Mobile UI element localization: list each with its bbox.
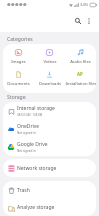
button[interactable]: Search — [72, 15, 83, 26]
staticText: Installation files — [65, 81, 96, 87]
button[interactable]: Images — [3, 46, 34, 68]
staticText: Network storage — [17, 165, 57, 172]
staticText: Internal storage — [17, 105, 55, 112]
staticText: Not signed in — [17, 149, 36, 153]
staticText: Images — [11, 59, 26, 65]
button[interactable]: Audio files — [65, 46, 96, 68]
button[interactable]: More options — [83, 15, 94, 26]
staticText: 34% — [80, 2, 89, 8]
button[interactable]: OneDrive — [3, 120, 96, 138]
staticText: APK — [77, 71, 84, 78]
staticText: Google Drive — [17, 141, 48, 148]
staticText: Trash — [17, 187, 30, 194]
staticText: OneDrive — [17, 123, 40, 130]
staticText: Downloads — [39, 81, 61, 87]
button[interactable]: Trash — [3, 181, 96, 199]
staticText: Documents — [7, 81, 30, 87]
button[interactable]: Documents — [3, 68, 34, 90]
button[interactable]: Internal storage — [3, 102, 96, 120]
button[interactable]: APK — [65, 68, 96, 90]
button[interactable]: Network storage — [3, 159, 96, 177]
button[interactable]: Downloads — [34, 68, 65, 90]
staticText: Audio files — [70, 59, 91, 65]
staticText: Not signed in — [17, 131, 36, 135]
staticText: Analyze storage — [17, 204, 55, 211]
button[interactable]: Google Drive — [3, 138, 96, 156]
staticText: Videos — [43, 59, 57, 65]
button[interactable]: Analyze storage — [3, 199, 96, 216]
staticText: Storage — [7, 94, 26, 101]
staticText: Categories — [7, 36, 33, 43]
button[interactable]: Videos — [34, 46, 65, 68]
staticText: 38.53 GB / 128 GB — [17, 113, 43, 117]
